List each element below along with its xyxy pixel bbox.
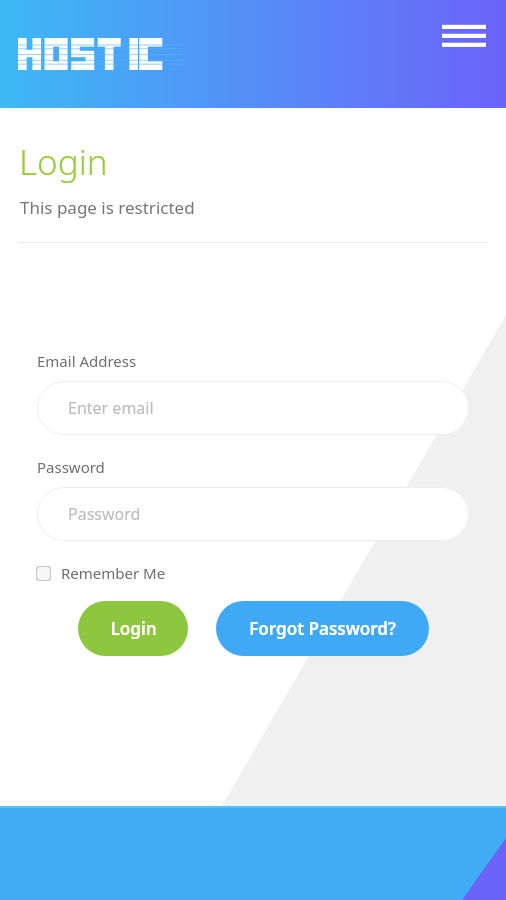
button[interactable]: Password	[37, 487, 469, 541]
button[interactable]: Menu	[436, 8, 492, 64]
staticText: Enter email	[68, 397, 154, 419]
staticText: Password	[37, 457, 105, 477]
button[interactable]: Enter email	[37, 381, 469, 435]
staticText: Login	[110, 617, 157, 640]
staticText: Remember Me	[61, 563, 166, 583]
staticText: Password	[68, 503, 141, 525]
staticText: Forgot Password?	[249, 617, 396, 640]
button[interactable]: Forgot Password?	[216, 601, 429, 656]
staticText: Login	[19, 138, 108, 186]
staticText: This page is restricted	[20, 196, 195, 219]
staticText: Email Address	[37, 351, 137, 371]
button[interactable]: Remember Me	[36, 563, 166, 583]
button[interactable]: Login	[78, 601, 188, 656]
button[interactable]: HOSTIC home	[18, 34, 183, 74]
